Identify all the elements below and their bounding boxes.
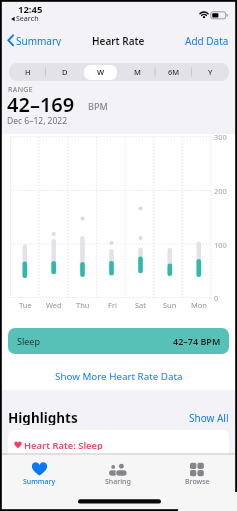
button[interactable]: D xyxy=(46,64,83,80)
staticText: Dec 6–12, 2022 xyxy=(7,115,68,125)
staticText: 300 xyxy=(214,132,227,141)
button[interactable]: 6M xyxy=(155,64,192,80)
staticText: 42–74 BPM xyxy=(173,335,221,347)
button[interactable]: Summary xyxy=(16,34,66,46)
button[interactable]: Browse xyxy=(169,477,225,486)
button[interactable]: M xyxy=(119,64,156,80)
staticText: H xyxy=(25,67,31,77)
staticText: Summary xyxy=(23,477,56,486)
staticText: Show All xyxy=(189,411,229,424)
button[interactable]: Summary xyxy=(11,477,67,486)
staticText: Show More Heart Rate Data xyxy=(55,370,183,383)
staticText: Search xyxy=(16,14,39,23)
staticText: Mon xyxy=(191,300,207,309)
staticText: D xyxy=(62,67,68,77)
staticText: 200 xyxy=(214,186,227,195)
staticText: Wed xyxy=(46,300,62,309)
staticText: 100 xyxy=(214,240,227,249)
button[interactable]: W xyxy=(82,64,119,80)
button[interactable]: Sharing xyxy=(90,477,146,486)
staticText: Sleep xyxy=(17,335,40,347)
staticText: Fri xyxy=(108,300,117,309)
staticText: 0 xyxy=(214,293,219,302)
button[interactable]: H xyxy=(9,64,46,80)
staticText: Y xyxy=(208,67,213,77)
button[interactable] xyxy=(84,65,117,80)
staticText: W xyxy=(97,67,105,77)
staticText: Sat xyxy=(135,300,147,309)
staticText: 12:45 xyxy=(18,3,43,15)
button[interactable]: Add Data xyxy=(157,34,229,46)
button[interactable] xyxy=(8,430,229,455)
staticText: Tue xyxy=(19,300,32,309)
staticText: 6M xyxy=(168,67,180,77)
staticText: Sharing xyxy=(105,477,131,486)
staticText: Add Data xyxy=(185,34,229,46)
staticText: Summary xyxy=(16,34,62,46)
staticText: Heart Rate: Sleep xyxy=(24,439,103,450)
button[interactable]: Y xyxy=(192,64,229,80)
staticText: Browse xyxy=(185,477,210,486)
staticText: M xyxy=(134,67,141,77)
button[interactable]: Show All xyxy=(157,411,229,424)
staticText: Sun xyxy=(163,300,177,309)
staticText: 42–169 xyxy=(7,91,75,115)
staticText: RANGE xyxy=(8,85,34,93)
button[interactable] xyxy=(8,328,229,354)
button[interactable]: Show More Heart Rate Data xyxy=(0,369,237,383)
staticText: Thu xyxy=(76,300,90,309)
staticText: BPM xyxy=(88,100,108,110)
staticText: Highlights xyxy=(8,409,78,425)
staticText: Heart Rate xyxy=(92,34,145,46)
